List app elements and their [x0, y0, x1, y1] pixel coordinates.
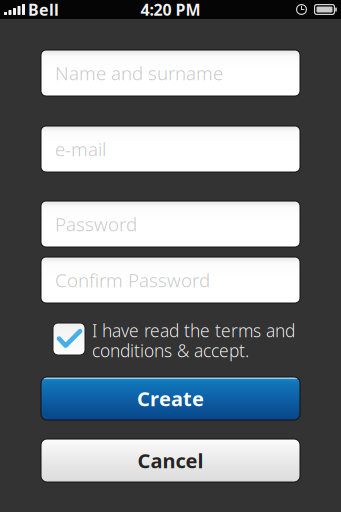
staticText: Bell [28, 0, 59, 20]
staticText: Password [55, 212, 137, 236]
button[interactable]: Create [41, 377, 300, 420]
staticText: Cancel [137, 447, 203, 474]
staticText: conditions & accept. [92, 339, 249, 362]
staticText: I have read the terms and [92, 319, 295, 342]
button[interactable]: e-mail [41, 126, 300, 172]
staticText: 4:20 PM [140, 0, 200, 20]
staticText: Confirm Password [55, 268, 210, 292]
button[interactable]: Confirm Password [41, 257, 300, 303]
button[interactable]: Name and surname [41, 50, 300, 96]
button[interactable]: Password [41, 201, 300, 247]
staticText: Name and surname [55, 61, 223, 85]
button[interactable]: Cancel [41, 439, 300, 482]
staticText: Create [137, 385, 204, 412]
button[interactable]: I have read the terms and [53, 323, 288, 359]
staticText: e-mail [55, 137, 106, 161]
